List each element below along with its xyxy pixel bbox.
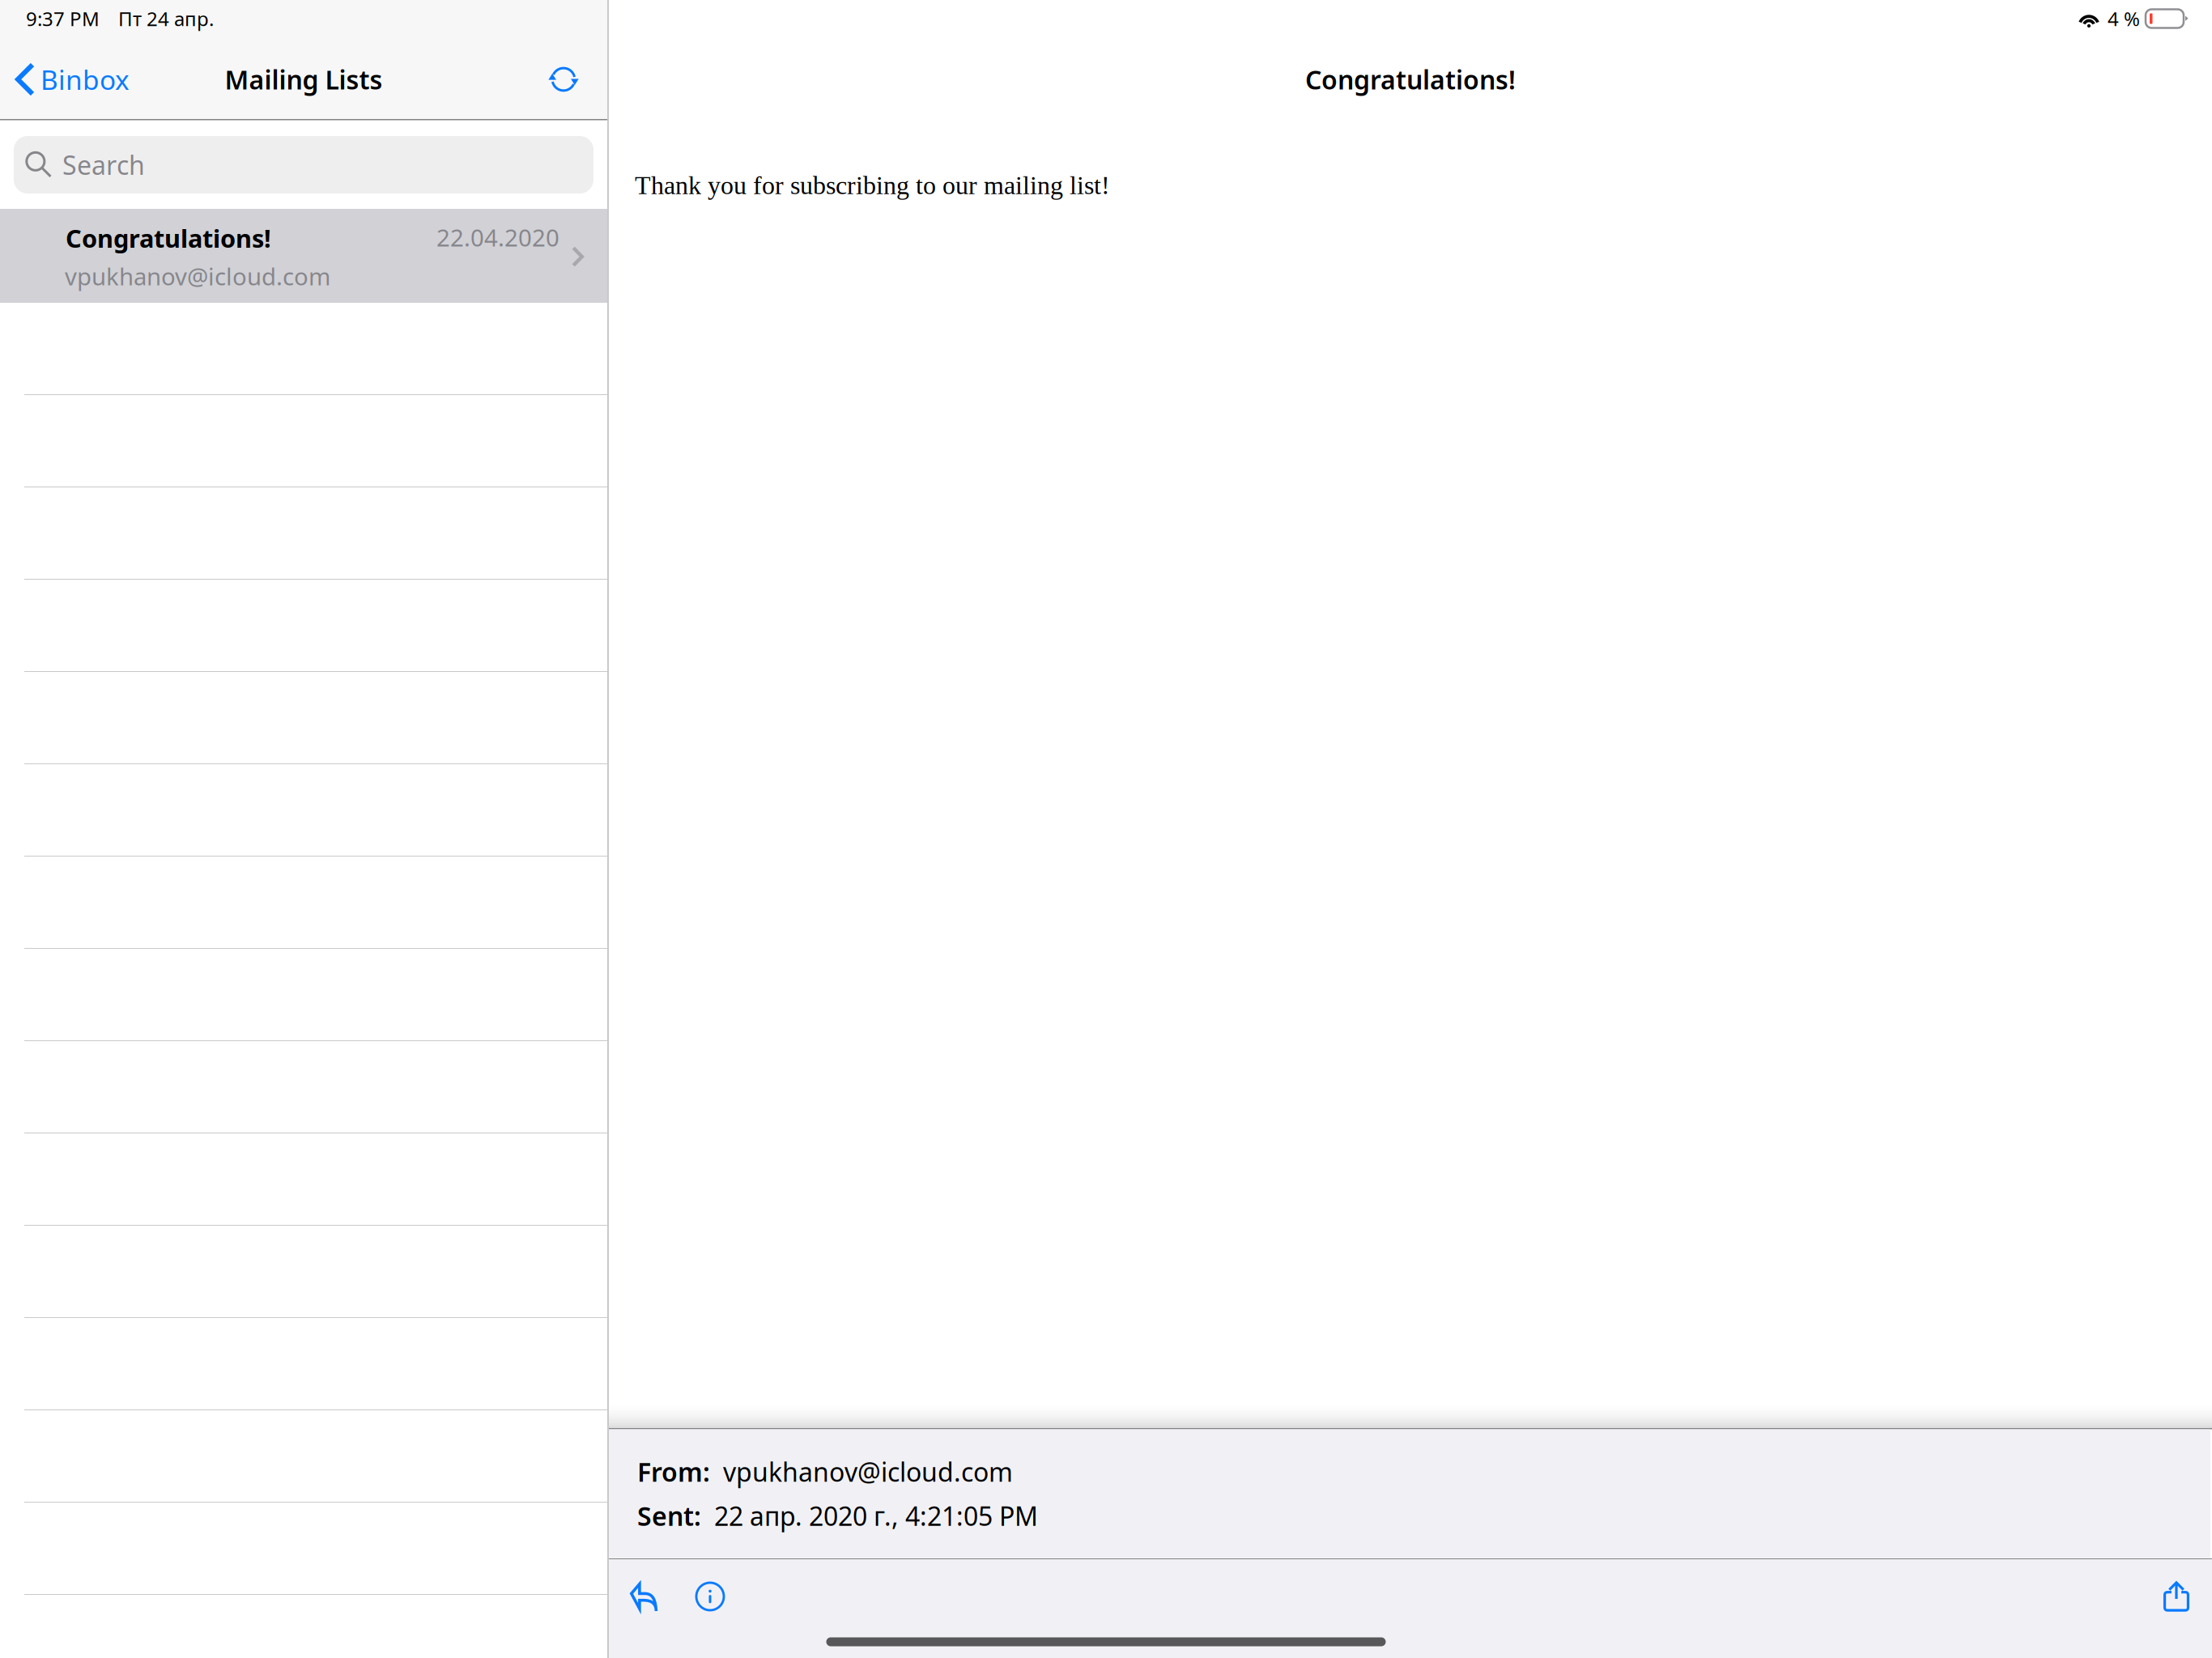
staticText: Пт 24 апр. [118, 6, 214, 32]
button[interactable]: Share [2155, 1575, 2198, 1618]
button[interactable]: Message details [690, 1576, 730, 1617]
staticText: 9:37 PM [26, 6, 100, 32]
staticText: From: [637, 1454, 710, 1489]
staticText: Mailing Lists [225, 62, 383, 97]
staticText: vpukhanov@icloud.com [65, 260, 330, 292]
staticText: Sent: [637, 1499, 701, 1533]
button[interactable]: Refresh [535, 51, 592, 108]
button[interactable]: Search [14, 136, 593, 193]
staticText: Binbox [40, 61, 130, 97]
button[interactable]: Reply [623, 1575, 666, 1618]
staticText: 4 % [2108, 6, 2140, 32]
staticText: 22 апр. 2020 г., 4:21:05 PM [701, 1499, 1038, 1533]
button[interactable]: Congratulations! [0, 209, 607, 303]
staticText: 22.04.2020 [436, 221, 559, 253]
staticText: Congratulations! [66, 221, 271, 254]
staticText: Thank you for subscribing to our mailing… [635, 171, 1110, 200]
button[interactable]: Binbox [7, 49, 130, 109]
staticText: Congratulations! [1305, 62, 1516, 97]
staticText: vpukhanov@icloud.com [710, 1454, 1013, 1489]
staticText: Search [62, 148, 145, 182]
